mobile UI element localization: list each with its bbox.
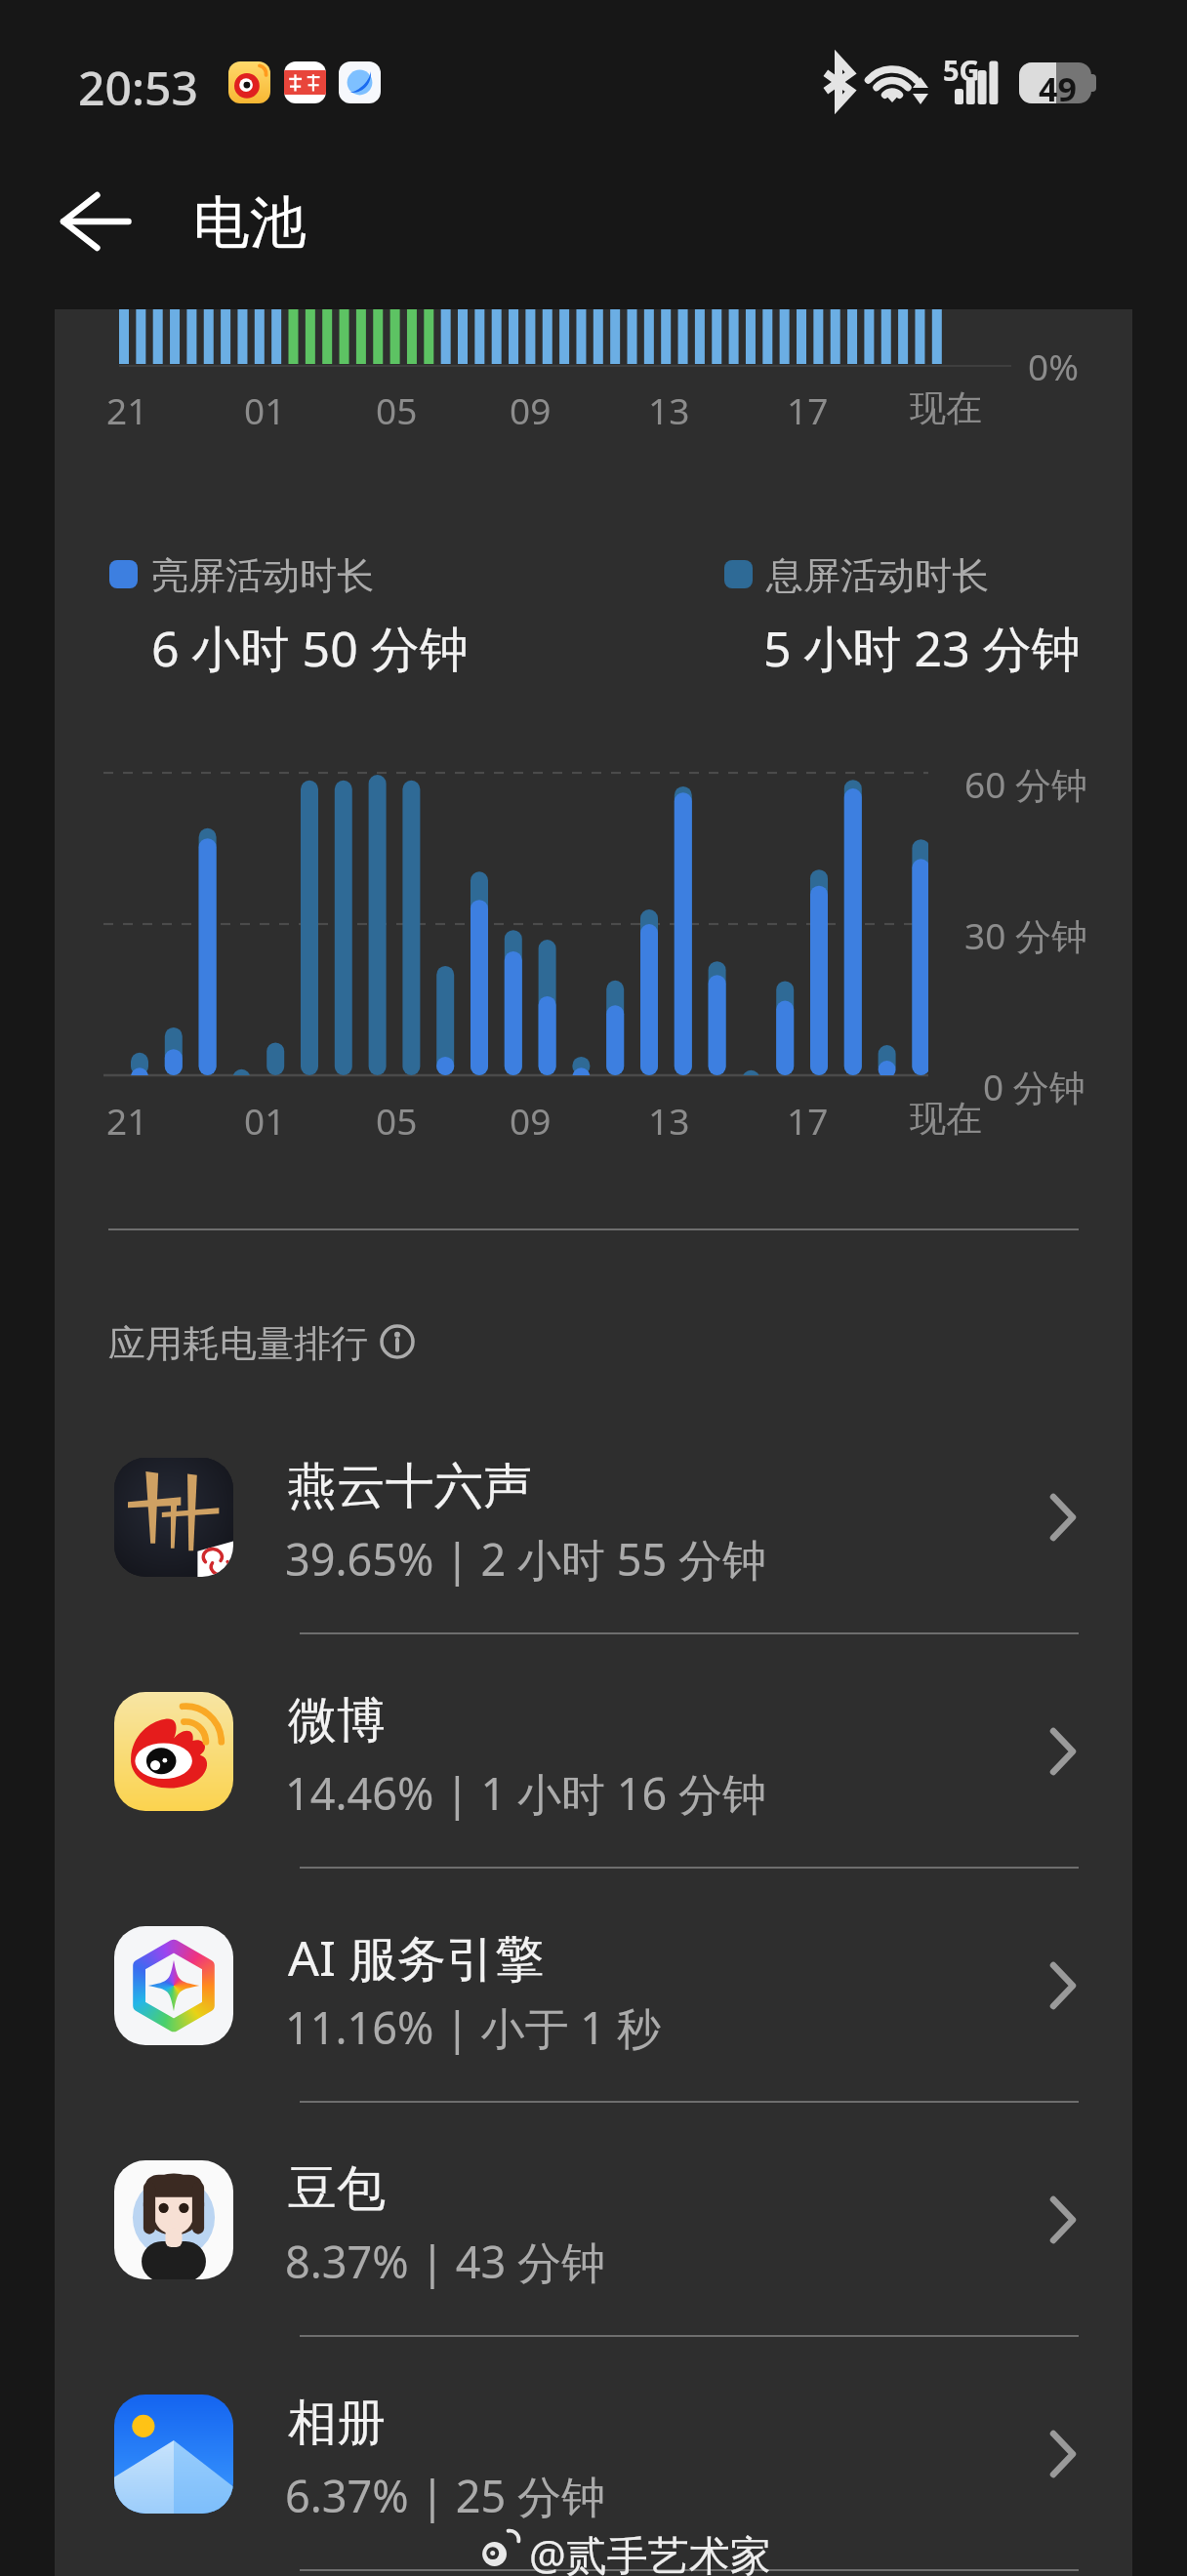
- staticText: 0%: [1028, 342, 1079, 390]
- button[interactable]: 豆包: [102, 2103, 1132, 2337]
- staticText: 豆包: [288, 2158, 386, 2220]
- staticText: 39.65% | 2 小时 55 分钟: [285, 1529, 766, 1589]
- staticText: 01: [244, 1096, 286, 1145]
- staticText: 05: [376, 385, 418, 434]
- button[interactable]: Info: [380, 1324, 415, 1359]
- staticText: 燕云十六声: [288, 1456, 532, 1517]
- staticText: 13: [648, 1096, 690, 1145]
- staticText: 17: [787, 1096, 829, 1145]
- button[interactable]: Back: [37, 163, 154, 280]
- staticText: 05: [376, 1096, 418, 1145]
- staticText: 21: [106, 1096, 148, 1145]
- staticText: 5 小时 23 分钟: [763, 615, 1081, 681]
- staticText: 6 小时 50 分钟: [151, 615, 469, 681]
- staticText: 49: [1039, 66, 1077, 107]
- staticText: @贰手艺术家: [529, 2526, 771, 2576]
- button[interactable]: AI 服务引擎: [102, 1869, 1132, 2103]
- staticText: 13: [648, 385, 690, 434]
- staticText: 息屏活动时长: [766, 552, 989, 599]
- staticText: AI 服务引擎: [288, 1924, 544, 1991]
- staticText: 17: [787, 385, 829, 434]
- staticText: 60 分钟: [964, 759, 1087, 809]
- staticText: 电池: [193, 187, 307, 259]
- staticText: 09: [510, 1096, 552, 1145]
- staticText: 14.46% | 1 小时 16 分钟: [285, 1763, 766, 1823]
- staticText: 微博: [288, 1690, 386, 1751]
- staticText: 8.37% | 43 分钟: [285, 2232, 606, 2291]
- staticText: 6.37% | 25 分钟: [285, 2466, 606, 2525]
- staticText: 09: [510, 385, 552, 434]
- staticText: 11.16% | 小于 1 秒: [285, 1997, 661, 2057]
- staticText: 应用耗电量排行: [108, 1320, 368, 1367]
- staticText: 相册: [288, 2393, 386, 2454]
- button[interactable]: 燕云十六声: [102, 1400, 1132, 1634]
- button[interactable]: 微博: [102, 1634, 1132, 1869]
- staticText: 21: [106, 385, 148, 434]
- staticText: 亮屏活动时长: [151, 552, 374, 599]
- staticText: 5G: [943, 51, 980, 89]
- button[interactable]: 相册: [102, 2337, 1132, 2571]
- staticText: 现在: [910, 385, 982, 431]
- staticText: 20:53: [78, 56, 198, 119]
- staticText: 现在: [910, 1096, 982, 1142]
- staticText: 30 分钟: [964, 910, 1087, 960]
- staticText: 01: [244, 385, 286, 434]
- staticText: 0 分钟: [983, 1062, 1085, 1111]
